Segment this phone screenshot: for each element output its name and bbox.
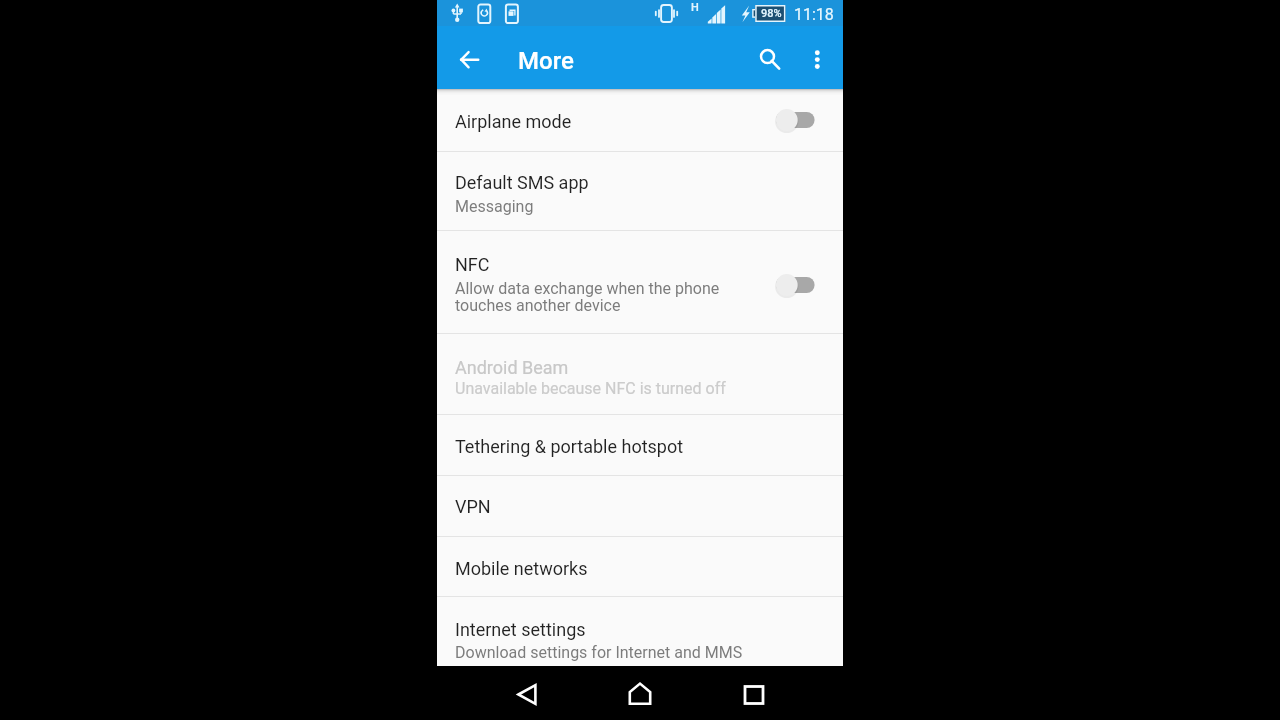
staticText: Allow data exchange when the phone touch…: [455, 279, 720, 315]
button[interactable]: Android Beam: [437, 334, 843, 414]
staticText: Download settings for Internet and MMS: [455, 643, 743, 662]
staticText: 98%: [761, 7, 782, 20]
staticText: 11:18: [794, 5, 834, 24]
button[interactable]: VPN: [437, 476, 843, 536]
button[interactable]: Back: [503, 669, 551, 717]
button[interactable]: Toggle: [771, 262, 819, 308]
staticText: H: [691, 1, 699, 14]
staticText: More: [518, 47, 574, 75]
staticText: Default SMS app: [455, 172, 589, 193]
staticText: NFC: [455, 254, 490, 275]
staticText: Mobile networks: [455, 558, 588, 579]
button[interactable]: NFC: [437, 231, 843, 333]
staticText: Android Beam: [455, 357, 569, 378]
staticText: Unavailable because NFC is turned off: [455, 379, 726, 398]
staticText: Tethering & portable hotspot: [455, 436, 684, 457]
staticText: Internet settings: [455, 619, 586, 640]
button[interactable]: More options: [795, 26, 840, 71]
button[interactable]: Airplane mode: [437, 89, 843, 151]
button[interactable]: Mobile networks: [437, 537, 843, 596]
staticText: VPN: [455, 496, 491, 517]
button[interactable]: Search: [745, 26, 790, 71]
button[interactable]: Toggle: [771, 97, 819, 143]
button[interactable]: Recents: [730, 669, 778, 717]
button[interactable]: Internet settings: [437, 597, 843, 666]
staticText: Airplane mode: [455, 111, 572, 132]
button[interactable]: Tethering & portable hotspot: [437, 415, 843, 475]
button[interactable]: Navigate up: [451, 41, 485, 75]
button[interactable]: Home: [616, 669, 664, 717]
button[interactable]: Default SMS app: [437, 152, 843, 230]
staticText: Messaging: [455, 197, 534, 216]
